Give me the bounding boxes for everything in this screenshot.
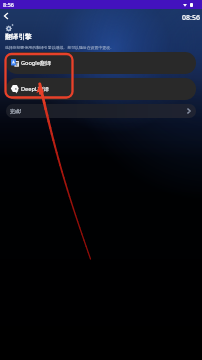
button[interactable]: 完成!: [6, 104, 196, 118]
staticText: DeepL翻译: [21, 85, 49, 93]
button[interactable]: Back: [0, 10, 11, 21]
staticText: Google翻译: [21, 59, 52, 67]
staticText: 选择您想要使用的翻译引擎以继续。您可以随后在设置中更改。: [5, 45, 114, 50]
staticText: 8:56: [3, 1, 14, 8]
button[interactable]: DeepL翻译: [6, 78, 196, 100]
staticText: 翻译引擎: [5, 33, 32, 41]
staticText: 完成!: [10, 108, 22, 115]
button[interactable]: Google翻译: [6, 52, 196, 74]
staticText: 08:56: [182, 13, 200, 23]
